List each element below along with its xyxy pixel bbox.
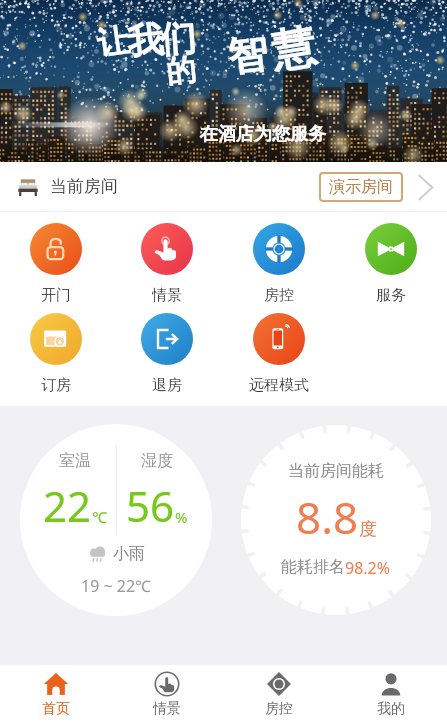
staticText: 退房 xyxy=(152,376,182,392)
button[interactable]: 演示房间 xyxy=(319,172,403,202)
button[interactable]: 房控 xyxy=(223,212,335,302)
staticText: 们 xyxy=(158,15,198,62)
button[interactable]: 退房 xyxy=(111,302,223,392)
staticText: 湿度 xyxy=(141,451,173,471)
staticText: 19 ~ 22℃ xyxy=(81,575,152,597)
staticText: 小雨 xyxy=(113,544,145,564)
staticText: 在酒店为您服务 xyxy=(200,123,326,146)
button[interactable]: 开门 xyxy=(0,212,111,302)
staticText: 22 xyxy=(43,477,92,534)
button[interactable]: 订房 xyxy=(0,302,111,392)
staticText: 度 xyxy=(359,518,377,541)
staticText: 我的 xyxy=(377,700,405,718)
staticText: 室温 xyxy=(59,451,91,471)
button[interactable]: 服务 xyxy=(335,212,447,302)
staticText: 房控 xyxy=(264,286,294,302)
button[interactable]: 房控 xyxy=(223,665,335,724)
staticText: 8.8 xyxy=(296,487,359,547)
button[interactable]: 我的 xyxy=(335,665,447,724)
staticText: 慧 xyxy=(268,19,320,80)
staticText: 让 xyxy=(94,20,132,64)
staticText: 演示房间 xyxy=(329,177,393,197)
staticText: % xyxy=(175,507,188,527)
button[interactable]: 当前房间能耗 xyxy=(240,424,432,616)
button[interactable]: 首页 xyxy=(0,665,111,724)
staticText: 情景 xyxy=(152,286,182,302)
staticText: 远程模式 xyxy=(249,376,309,392)
staticText: 智 xyxy=(225,28,271,82)
button[interactable]: 室温 xyxy=(20,424,212,616)
staticText: 98.2% xyxy=(345,557,391,579)
staticText: 首页 xyxy=(42,700,70,718)
staticText: 当前房间 xyxy=(50,176,118,197)
staticText: 56 xyxy=(126,477,175,534)
button[interactable]: 远程模式 xyxy=(223,302,335,392)
staticText: 当前房间能耗 xyxy=(288,461,384,481)
button[interactable]: 当前房间 xyxy=(0,162,447,211)
staticText: 服务 xyxy=(376,286,406,302)
button[interactable]: Open room list xyxy=(407,165,443,209)
staticText: 房控 xyxy=(265,700,293,718)
staticText: 的 xyxy=(164,50,198,91)
staticText: 能耗排名 xyxy=(281,557,345,577)
staticText: 订房 xyxy=(41,376,71,392)
staticText: ℃ xyxy=(92,507,107,527)
staticText: 情景 xyxy=(153,700,181,718)
staticText: 我 xyxy=(125,16,165,65)
staticText: 开门 xyxy=(41,286,71,302)
button[interactable]: 情景 xyxy=(111,665,223,724)
button[interactable]: 情景 xyxy=(111,212,223,302)
